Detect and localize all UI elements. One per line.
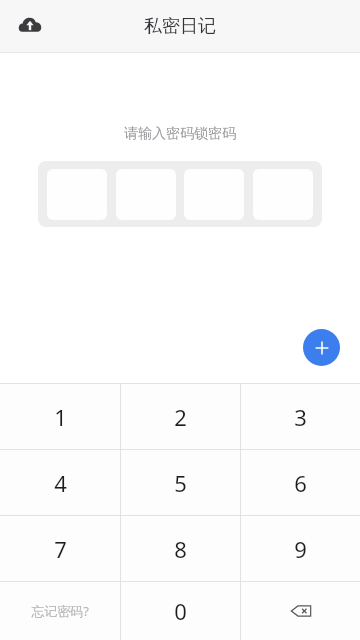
button[interactable]: 8 <box>121 516 240 581</box>
staticText: 2 <box>174 402 187 432</box>
staticText: 1 <box>54 402 67 432</box>
button[interactable]: 4 <box>0 450 120 515</box>
button[interactable]: 0 <box>121 582 240 640</box>
staticText: 忘记密码? <box>31 602 89 620</box>
staticText: 6 <box>294 468 307 498</box>
staticText: 9 <box>294 534 307 564</box>
staticText: 5 <box>174 468 187 498</box>
button[interactable]: 9 <box>241 516 360 581</box>
button[interactable]: Add new entry <box>303 329 340 366</box>
button[interactable]: 5 <box>121 450 240 515</box>
staticText: 8 <box>174 534 187 564</box>
staticText: 请输入密码锁密码 <box>124 125 236 143</box>
button[interactable]: 1 <box>0 384 120 449</box>
button[interactable]: Backup to cloud <box>8 4 52 48</box>
button[interactable]: 7 <box>0 516 120 581</box>
button[interactable]: 6 <box>241 450 360 515</box>
staticText: 0 <box>174 596 187 626</box>
button[interactable]: 2 <box>121 384 240 449</box>
button[interactable]: 忘记密码? <box>0 582 120 640</box>
staticText: 3 <box>294 402 307 432</box>
staticText: 私密日记 <box>144 15 216 38</box>
button[interactable]: 3 <box>241 384 360 449</box>
button[interactable]: Backspace <box>241 582 360 640</box>
staticText: 4 <box>54 468 67 498</box>
staticText: 7 <box>54 534 67 564</box>
